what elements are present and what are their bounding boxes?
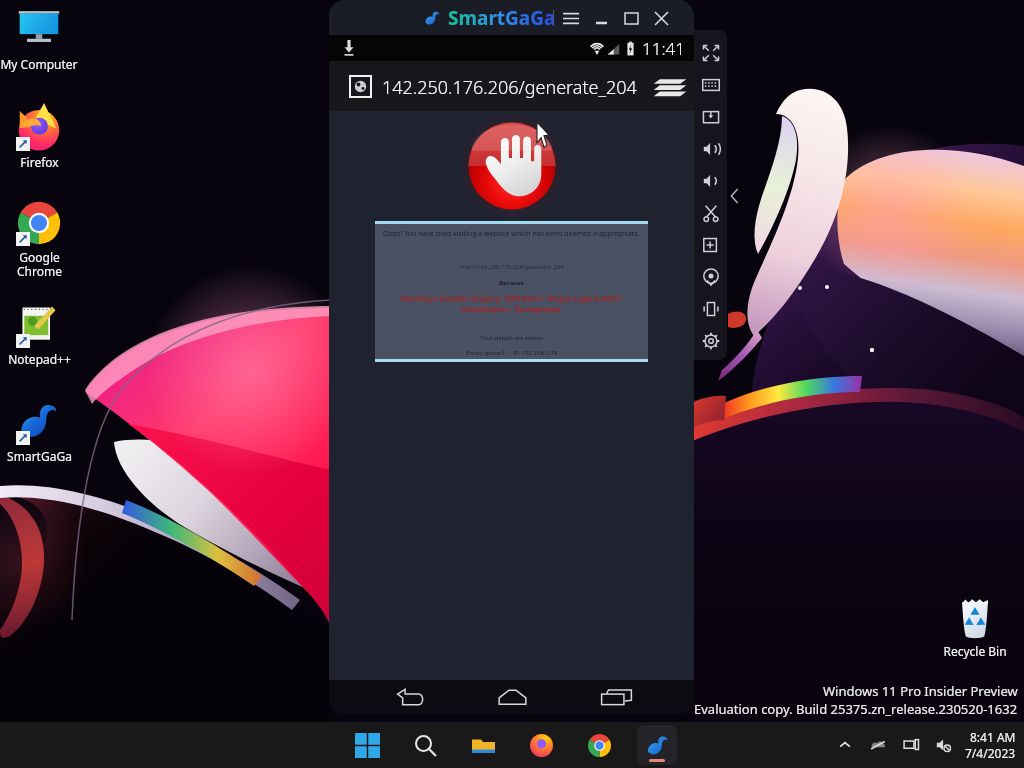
button[interactable]: SmartGaGa [0, 398, 78, 464]
button[interactable]: Settings [694, 325, 727, 357]
button[interactable]: Maximize [617, 4, 645, 32]
button[interactable]: Start [347, 725, 387, 765]
button[interactable]: Location [694, 261, 727, 293]
button[interactable]: Add [694, 229, 727, 261]
button[interactable]: Recents [593, 684, 639, 710]
staticText: 11:41 [642, 37, 685, 60]
button[interactable]: My Computer [0, 6, 78, 72]
staticText: 7/4/2023 [965, 745, 1016, 761]
button[interactable]: Firefox [521, 725, 561, 765]
staticText: Google Chrome [17, 249, 62, 280]
button[interactable]: Volume up [694, 133, 727, 165]
staticText: Because [499, 279, 524, 287]
button[interactable]: Keyboard [694, 69, 727, 101]
button[interactable]: Menu [557, 4, 585, 32]
button[interactable]: Back [387, 684, 433, 710]
button[interactable]: Google Chrome [579, 725, 619, 765]
button[interactable]: File Explorer [463, 725, 503, 765]
button[interactable]: Close [647, 4, 675, 32]
button[interactable]: Collapse toolbar [727, 185, 741, 207]
button[interactable]: Install APK [694, 101, 727, 133]
staticText: 8:41 AM [970, 729, 1016, 745]
staticText: Recycle Bin [943, 643, 1007, 659]
staticText: Blocking a website category: 'CIPA Block… [401, 294, 622, 304]
staticText: Windows 11 Pro Insider Preview [823, 682, 1018, 700]
button[interactable]: Google Chrome [0, 199, 78, 280]
staticText: http://142.250.176.206/generate_204 [459, 263, 564, 271]
button[interactable]: Tabs [651, 73, 689, 99]
button[interactable]: Notepad++ [0, 301, 78, 367]
button[interactable]: Search [405, 725, 445, 765]
button[interactable]: SmartGaGa [637, 725, 677, 765]
button[interactable]: Firefox [0, 104, 78, 170]
staticText: SmartGaGa [448, 5, 556, 31]
staticText: My Computer [0, 56, 78, 72]
staticText: Oops! You have tried visiting a website … [383, 229, 640, 239]
button[interactable]: Home [489, 684, 535, 710]
staticText: SmartGaGa [7, 448, 72, 464]
staticText: Email: group1 IP: 192.168.1.74 [466, 349, 558, 357]
staticText: Notepad++ [8, 351, 71, 367]
button[interactable]: Minimize [587, 4, 615, 32]
button[interactable]: Volume down [694, 165, 727, 197]
button[interactable]: Recycle Bin [936, 595, 1014, 659]
staticText: Your details are below: [480, 334, 544, 342]
staticText: Classification : 'Pornography' [461, 305, 563, 315]
staticText: Evaluation copy. Build 25375.zn_release.… [694, 700, 1018, 718]
button[interactable]: Cut [694, 197, 727, 229]
staticText: 142.250.176.206/generate_204 [382, 75, 637, 100]
button[interactable]: Shake [694, 293, 727, 325]
button[interactable]: Site info [350, 76, 371, 97]
staticText: Firefox [20, 154, 59, 170]
button[interactable]: Fullscreen [694, 37, 727, 69]
